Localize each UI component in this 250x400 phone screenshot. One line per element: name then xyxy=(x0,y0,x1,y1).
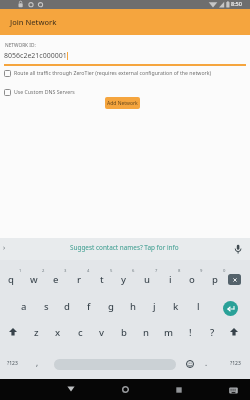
staticText: 8 xyxy=(178,268,181,274)
button[interactable]: r xyxy=(69,267,89,291)
button[interactable]: i xyxy=(160,267,180,291)
button[interactable]: y xyxy=(114,267,134,291)
button[interactable]: ?123 xyxy=(224,353,246,373)
staticText: 3 xyxy=(64,268,67,274)
staticText: n xyxy=(143,326,149,339)
staticText: w xyxy=(30,273,38,286)
staticText: 1 xyxy=(19,268,22,274)
button[interactable]: Suggest contact names? Tap for info xyxy=(0,238,250,260)
staticText: e xyxy=(53,273,59,286)
button[interactable]: l xyxy=(188,294,208,318)
button[interactable]: k xyxy=(166,294,186,318)
button[interactable]: z xyxy=(26,320,46,344)
staticText: l xyxy=(197,300,200,313)
button[interactable] xyxy=(116,380,134,398)
staticText: v xyxy=(99,326,105,339)
staticText: 5 xyxy=(110,268,113,274)
staticText: r xyxy=(77,273,82,286)
staticText: Route all traffic through ZeroTier (requ… xyxy=(14,69,212,76)
button[interactable]: v xyxy=(92,320,112,344)
staticText: ? xyxy=(210,326,215,339)
staticText: t xyxy=(100,273,104,286)
staticText: › xyxy=(3,243,6,253)
button[interactable] xyxy=(4,89,11,96)
staticText: 8:50 xyxy=(231,0,242,7)
button[interactable] xyxy=(224,381,242,399)
button[interactable]: f xyxy=(79,294,99,318)
button[interactable]: m xyxy=(158,320,178,344)
staticText: o xyxy=(189,273,195,286)
button[interactable]: a xyxy=(14,294,34,318)
staticText: . xyxy=(205,357,208,368)
staticText: k xyxy=(173,300,179,313)
button[interactable]: e xyxy=(46,267,66,291)
staticText: y xyxy=(121,273,127,286)
staticText: h xyxy=(130,300,136,313)
button[interactable]: p xyxy=(205,267,225,291)
button[interactable]: o xyxy=(182,267,202,291)
button[interactable]: d xyxy=(57,294,77,318)
staticText: 2 xyxy=(42,268,45,274)
staticText: Use Custom DNS Servers xyxy=(14,88,75,95)
staticText: Add Network xyxy=(107,100,138,107)
staticText: g xyxy=(108,300,114,313)
button[interactable] xyxy=(225,320,243,344)
button[interactable]: q xyxy=(1,267,21,291)
staticText: s xyxy=(44,300,49,313)
staticText: Suggest contact names? Tap for info xyxy=(70,243,179,252)
staticText: m xyxy=(164,326,173,339)
button[interactable]: x xyxy=(48,320,68,344)
staticText: NETWORK ID: xyxy=(5,42,36,49)
button[interactable]: j xyxy=(144,294,164,318)
button[interactable]: ! xyxy=(180,320,200,344)
button[interactable]: n xyxy=(136,320,156,344)
staticText: 9 xyxy=(200,268,203,274)
button[interactable] xyxy=(62,380,80,398)
staticText: c xyxy=(78,326,83,339)
staticText: f xyxy=(87,300,91,313)
staticText: z xyxy=(34,326,39,339)
button[interactable]: . xyxy=(199,352,213,372)
staticText: j xyxy=(153,300,156,313)
button[interactable] xyxy=(228,274,241,285)
staticText: ?123 xyxy=(7,360,18,367)
staticText: 7 xyxy=(155,268,158,274)
staticText: q xyxy=(8,273,14,286)
staticText: 8056c2e21c000001 xyxy=(4,51,67,61)
button[interactable]: t xyxy=(92,267,112,291)
staticText: u xyxy=(144,273,150,286)
staticText: ! xyxy=(189,326,192,339)
staticText: 6 xyxy=(132,268,135,274)
button[interactable]: u xyxy=(137,267,157,291)
button[interactable]: ? xyxy=(202,320,222,344)
button[interactable]: h xyxy=(123,294,143,318)
button[interactable]: Add Network xyxy=(105,97,140,109)
staticText: ?123 xyxy=(230,360,241,367)
button[interactable] xyxy=(182,354,198,374)
staticText: , xyxy=(36,357,39,368)
staticText: x xyxy=(55,326,61,339)
staticText: 0 xyxy=(223,268,226,274)
button[interactable] xyxy=(4,70,11,77)
staticText: d xyxy=(64,300,70,313)
button[interactable]: , xyxy=(30,352,44,372)
staticText: b xyxy=(121,326,127,339)
staticText: i xyxy=(169,273,172,286)
button[interactable]: g xyxy=(101,294,121,318)
button[interactable]: w xyxy=(24,267,44,291)
button[interactable]: b xyxy=(114,320,134,344)
button[interactable] xyxy=(4,320,22,344)
button[interactable]: ?123 xyxy=(1,353,23,373)
button[interactable] xyxy=(170,381,188,399)
button[interactable]: c xyxy=(70,320,90,344)
button[interactable] xyxy=(223,301,238,316)
staticText: a xyxy=(21,300,27,313)
button[interactable]: s xyxy=(36,294,56,318)
staticText: Join Network xyxy=(10,17,57,27)
staticText: p xyxy=(212,273,218,286)
staticText: 4 xyxy=(87,268,90,274)
